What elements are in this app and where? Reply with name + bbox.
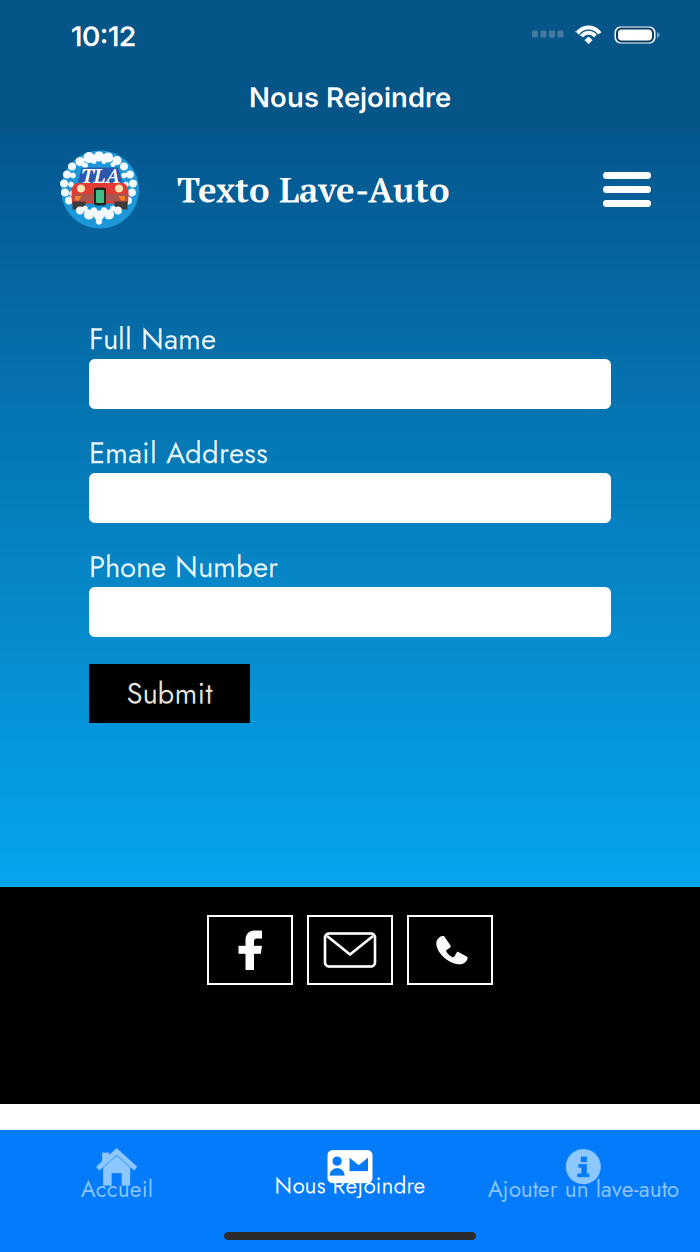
staticText: TLA: [80, 162, 119, 189]
button[interactable]: Accueil: [0, 1140, 233, 1212]
staticText: Ajouter un lave-auto: [488, 1173, 679, 1205]
button[interactable]: Facebook: [208, 916, 292, 984]
staticText: Accueil: [81, 1173, 153, 1205]
button[interactable]: Submit: [89, 664, 250, 723]
staticText: Full Name: [89, 318, 216, 360]
button[interactable]: Email us: [308, 916, 392, 984]
staticText: 10:12: [71, 19, 136, 53]
staticText: Email Address: [89, 432, 268, 474]
button[interactable]: Ajouter un lave-auto: [467, 1140, 700, 1212]
staticText: Nous Rejoindre: [249, 80, 451, 114]
staticText: Nous Rejoindre: [274, 1169, 425, 1202]
button[interactable]: Nous Rejoindre: [233, 1140, 467, 1212]
staticText: Submit: [126, 672, 212, 715]
button[interactable]: Call us: [408, 916, 492, 984]
button[interactable]: Menu: [593, 157, 661, 221]
staticText: Texto Lave-Auto: [177, 166, 450, 212]
staticText: Phone Number: [89, 546, 278, 588]
